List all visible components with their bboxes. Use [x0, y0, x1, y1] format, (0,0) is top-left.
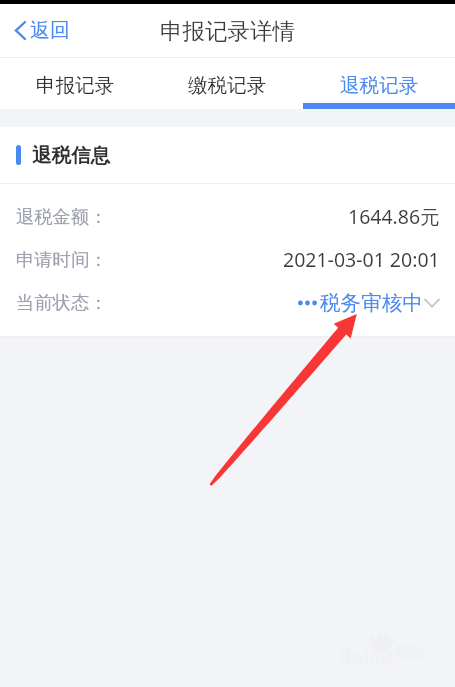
staticText: 2021-03-01 20:01 — [283, 246, 440, 273]
button[interactable]: 申报记录 — [0, 58, 151, 109]
staticText: 申报记录详情 — [160, 17, 295, 45]
staticText: 缴税记录 — [188, 73, 267, 98]
staticText: 退税金额： — [16, 205, 108, 228]
staticText: 退税记录 — [340, 73, 419, 98]
staticText: 1644.86元 — [348, 203, 440, 230]
button[interactable]: 返回 — [0, 10, 84, 51]
staticText: 返回 — [30, 18, 70, 43]
button[interactable]: 退税记录 — [303, 58, 455, 109]
button[interactable]: 税务审核中，展开详情 — [298, 290, 440, 316]
staticText: 申请时间： — [16, 248, 108, 271]
staticText: 申报记录 — [36, 73, 115, 98]
staticText: 当前状态： — [16, 291, 108, 314]
staticText: 税务审核中 — [320, 290, 423, 316]
staticText: 退税信息 — [32, 143, 110, 168]
button[interactable]: 缴税记录 — [151, 58, 303, 109]
